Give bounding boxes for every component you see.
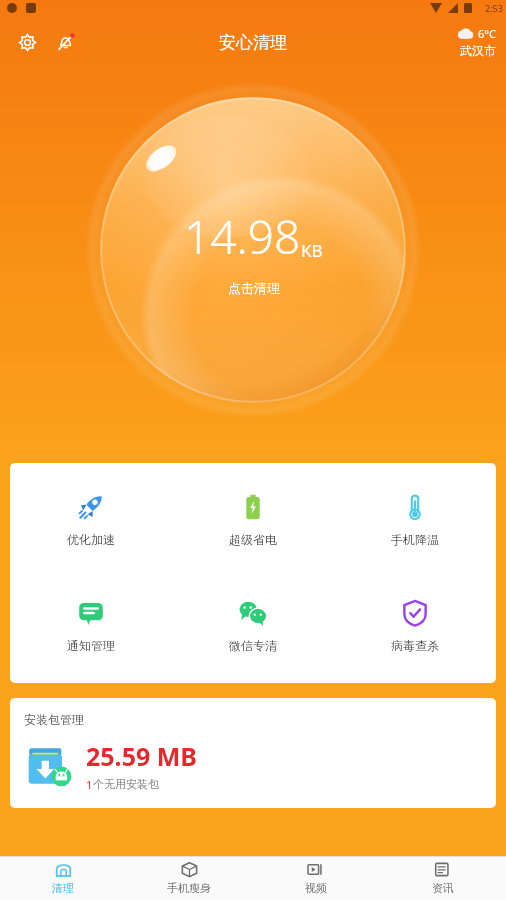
staticText: KB bbox=[301, 239, 323, 262]
staticText: 资讯 bbox=[432, 881, 454, 895]
staticText: 优化加速 bbox=[67, 532, 115, 547]
staticText: 手机降温 bbox=[391, 532, 439, 547]
staticText: 超级省电 bbox=[229, 532, 277, 547]
staticText: 通知管理 bbox=[67, 638, 115, 653]
staticText: 清理 bbox=[52, 881, 74, 895]
button[interactable]: 6°C bbox=[456, 26, 496, 58]
staticText: 安装包管理 bbox=[24, 712, 84, 727]
button[interactable]: 手机瘦身 bbox=[126, 857, 252, 900]
button[interactable]: 微信专清 bbox=[172, 591, 334, 661]
button[interactable]: 通知管理 bbox=[10, 591, 172, 661]
staticText: 14.98 bbox=[184, 205, 301, 268]
staticText: 视频 bbox=[305, 881, 327, 895]
staticText: 点击清理 bbox=[228, 280, 280, 296]
staticText: 武汉市 bbox=[460, 43, 496, 58]
button[interactable]: 视频 bbox=[252, 857, 379, 900]
button[interactable]: 手机降温 bbox=[334, 485, 496, 555]
staticText: 2:53 bbox=[485, 2, 503, 14]
button[interactable]: 清理 bbox=[0, 857, 126, 900]
staticText: 病毒查杀 bbox=[391, 638, 439, 653]
staticText: 微信专清 bbox=[229, 638, 277, 653]
button[interactable]: 超级省电 bbox=[172, 485, 334, 555]
button[interactable]: 优化加速 bbox=[10, 485, 172, 555]
staticText: 1 bbox=[86, 777, 93, 792]
staticText: 个无用安装包 bbox=[93, 777, 159, 791]
button[interactable]: 14.98 bbox=[144, 195, 363, 306]
staticText: 安心清理 bbox=[219, 32, 287, 53]
staticText: 6°C bbox=[478, 26, 496, 41]
button[interactable]: Notifications off bbox=[48, 25, 82, 59]
button[interactable]: Settings bbox=[10, 25, 44, 59]
staticText: 手机瘦身 bbox=[167, 881, 211, 895]
staticText: 25.59 MB bbox=[86, 739, 197, 773]
button[interactable]: 安装包管理 bbox=[10, 698, 496, 808]
button[interactable]: 病毒查杀 bbox=[334, 591, 496, 661]
button[interactable]: 资讯 bbox=[379, 857, 506, 900]
